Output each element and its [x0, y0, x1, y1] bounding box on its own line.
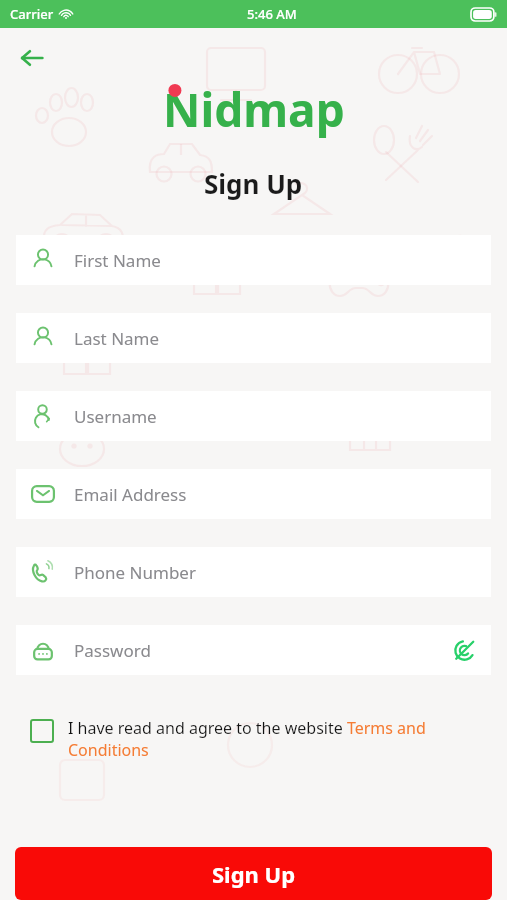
- button[interactable]: Back: [12, 38, 52, 78]
- button[interactable]: Email Address: [16, 469, 491, 519]
- staticText: Email Address: [74, 483, 187, 506]
- button[interactable]: Show password: [449, 635, 479, 665]
- staticText: Phone Number: [74, 561, 196, 584]
- staticText: Sign Up: [212, 859, 296, 889]
- button[interactable]: Sign Up: [15, 847, 492, 900]
- button[interactable]: Password: [16, 625, 491, 675]
- button[interactable]: Username: [16, 391, 491, 441]
- button[interactable]: First Name: [16, 235, 491, 285]
- staticText: Nidmap: [163, 78, 345, 140]
- staticText: First Name: [74, 249, 161, 272]
- button[interactable]: Last Name: [16, 313, 491, 363]
- button[interactable]: I have read and agree to the website Ter…: [30, 717, 489, 761]
- staticText: Password: [74, 639, 151, 662]
- staticText: Last Name: [74, 327, 160, 350]
- staticText: I have read and agree to the website Ter…: [68, 717, 489, 761]
- button[interactable]: Phone Number: [16, 547, 491, 597]
- staticText: 5:46 AM: [247, 5, 297, 23]
- staticText: Sign Up: [204, 166, 303, 201]
- staticText: Carrier: [10, 5, 54, 23]
- staticText: Username: [74, 405, 157, 428]
